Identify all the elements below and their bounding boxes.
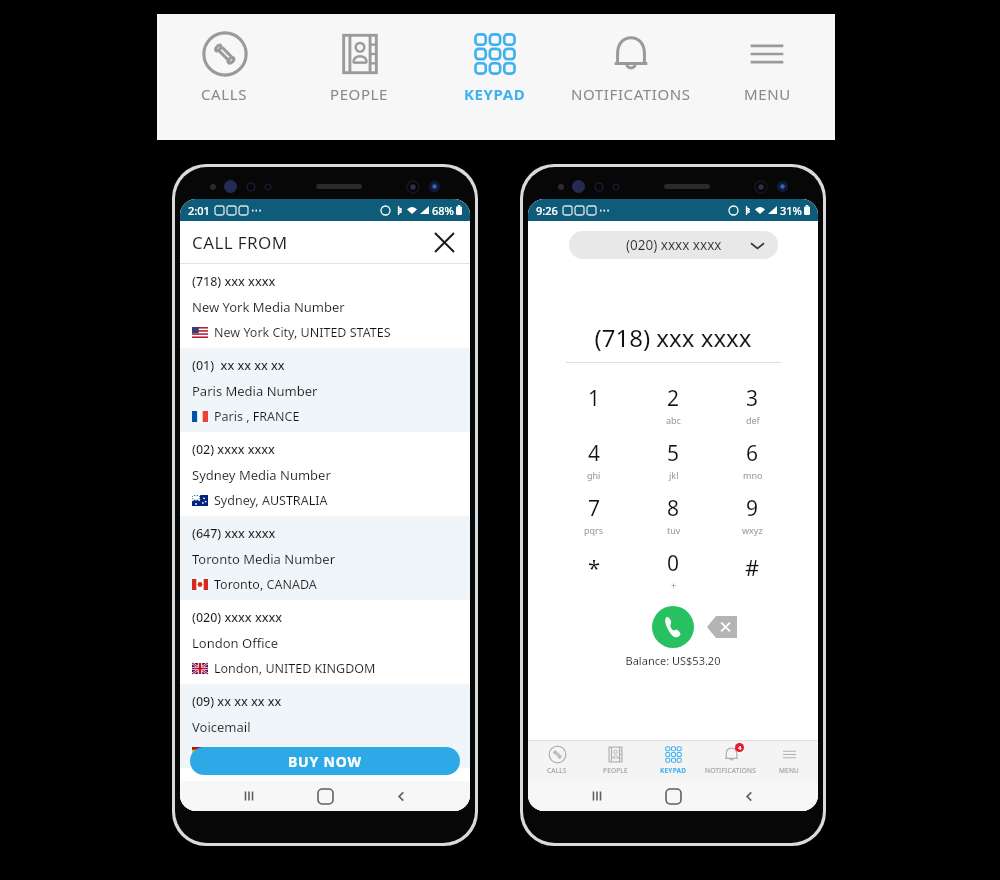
button[interactable]: CALLS [157, 14, 292, 110]
button[interactable]: 5 [634, 432, 713, 487]
staticText: Sydney, AUSTRALIA [214, 492, 328, 509]
button[interactable]: (01) xx xx xx xx [180, 348, 470, 432]
button[interactable]: NOTIFICATIONS [563, 14, 699, 110]
button[interactable]: PEOPLE [586, 741, 644, 781]
staticText: Balance: US$53.20 [528, 653, 818, 668]
button[interactable]: 6 [713, 432, 792, 487]
staticText: New York City, UNITED STATES [214, 324, 391, 341]
staticText: Madrid, SPAIN [214, 744, 299, 761]
button[interactable]: (020) xxxx xxxx [180, 600, 470, 684]
staticText: Paris Media Number [192, 382, 318, 400]
staticText: 2 [667, 384, 680, 413]
staticText: MENU [744, 84, 791, 104]
staticText: MENU [779, 766, 800, 775]
button[interactable]: 4 [702, 741, 760, 781]
staticText: jkl [669, 469, 679, 481]
staticText: pqrs [584, 524, 604, 536]
button[interactable]: 0 [634, 542, 713, 597]
button[interactable]: Delete [707, 616, 737, 638]
staticText: + [671, 579, 677, 591]
staticText: (020) xxxx xxxx [626, 236, 722, 254]
staticText: Paris , FRANCE [214, 408, 300, 425]
button[interactable]: 4 [554, 432, 634, 487]
staticText: ⋯ [599, 204, 610, 217]
staticText: 68% [432, 203, 454, 218]
staticText: Toronto, CANADA [214, 576, 317, 593]
staticText: # [745, 552, 760, 582]
staticText: 2:01 [188, 203, 210, 218]
staticText: NOTIFICATIONS [571, 84, 691, 104]
staticText: New York Media Number [192, 298, 345, 316]
button[interactable]: 7 [554, 487, 634, 542]
staticText: KEYPAD [464, 84, 526, 104]
button[interactable]: (718) xxx xxxx [180, 264, 470, 348]
staticText: Toronto Media Number [192, 550, 336, 568]
button[interactable]: MENU [699, 14, 835, 110]
button[interactable]: PEOPLE [292, 14, 427, 110]
staticText: 5 [667, 439, 680, 468]
staticText: 3 [746, 384, 759, 413]
staticText: (02) xxxx xxxx [192, 441, 275, 458]
staticText: * [588, 552, 601, 582]
staticText: ghi [587, 469, 601, 481]
button[interactable]: 9 [713, 487, 792, 542]
staticText: (647) xxx xxxx [192, 525, 276, 542]
button[interactable]: CALLS [528, 741, 586, 781]
button[interactable]: (02) xxxx xxxx [180, 432, 470, 516]
staticText: PEOPLE [330, 84, 389, 104]
staticText: abc [666, 414, 681, 426]
button[interactable]: KEYPAD [427, 14, 563, 110]
staticText: London, UNITED KINGDOM [214, 660, 376, 677]
button[interactable]: MENU [760, 741, 818, 781]
staticText: 8 [667, 494, 680, 523]
staticText: (718) xxx xxxx [528, 321, 818, 354]
staticText: 7 [588, 494, 601, 523]
staticText: 9:26 [536, 203, 558, 218]
button[interactable]: KEYPAD [644, 741, 702, 781]
staticText: CALLS [201, 84, 248, 104]
button[interactable]: (09) xx xx xx xx [180, 684, 470, 768]
staticText: mno [743, 469, 763, 481]
button[interactable]: BUY NOW [190, 747, 460, 775]
staticText: CALL FROM [192, 231, 288, 254]
staticText: 4 [738, 744, 742, 752]
staticText: (718) xxx xxxx [192, 273, 276, 290]
staticText: Sydney Media Number [192, 466, 331, 484]
staticText: Voicemail [192, 718, 251, 736]
button[interactable]: 8 [634, 487, 713, 542]
staticText: 4 [588, 439, 601, 468]
staticText: wxyz [742, 524, 763, 536]
staticText: def [746, 414, 760, 426]
button[interactable]: (647) xxx xxxx [180, 516, 470, 600]
button[interactable]: * [554, 542, 634, 597]
button[interactable]: Close [428, 226, 460, 258]
staticText: NOTIFICATIONS [705, 766, 757, 775]
staticText: 9 [746, 494, 759, 523]
staticText: ⋯ [251, 204, 262, 217]
staticText: PEOPLE [603, 766, 628, 775]
button[interactable]: (020) xxxx xxxx [569, 231, 778, 259]
button[interactable]: 2 [634, 377, 713, 432]
staticText: London Office [192, 634, 279, 652]
button[interactable]: 3 [713, 377, 792, 432]
staticText: tuv [667, 524, 681, 536]
staticText: 0 [667, 549, 680, 578]
staticText: 1 [588, 384, 601, 413]
staticText: 31% [780, 203, 802, 218]
staticText: BUY NOW [288, 752, 362, 771]
staticText: (020) xxxx xxxx [192, 609, 283, 626]
staticText: (01) xx xx xx xx [192, 357, 285, 374]
button[interactable]: 1 [554, 377, 634, 432]
staticText: CALLS [547, 766, 567, 775]
button[interactable]: Call [652, 606, 694, 648]
staticText: KEYPAD [660, 766, 687, 775]
staticText: 6 [746, 439, 759, 468]
staticText: (09) xx xx xx xx [192, 693, 282, 710]
button[interactable]: # [713, 542, 792, 597]
